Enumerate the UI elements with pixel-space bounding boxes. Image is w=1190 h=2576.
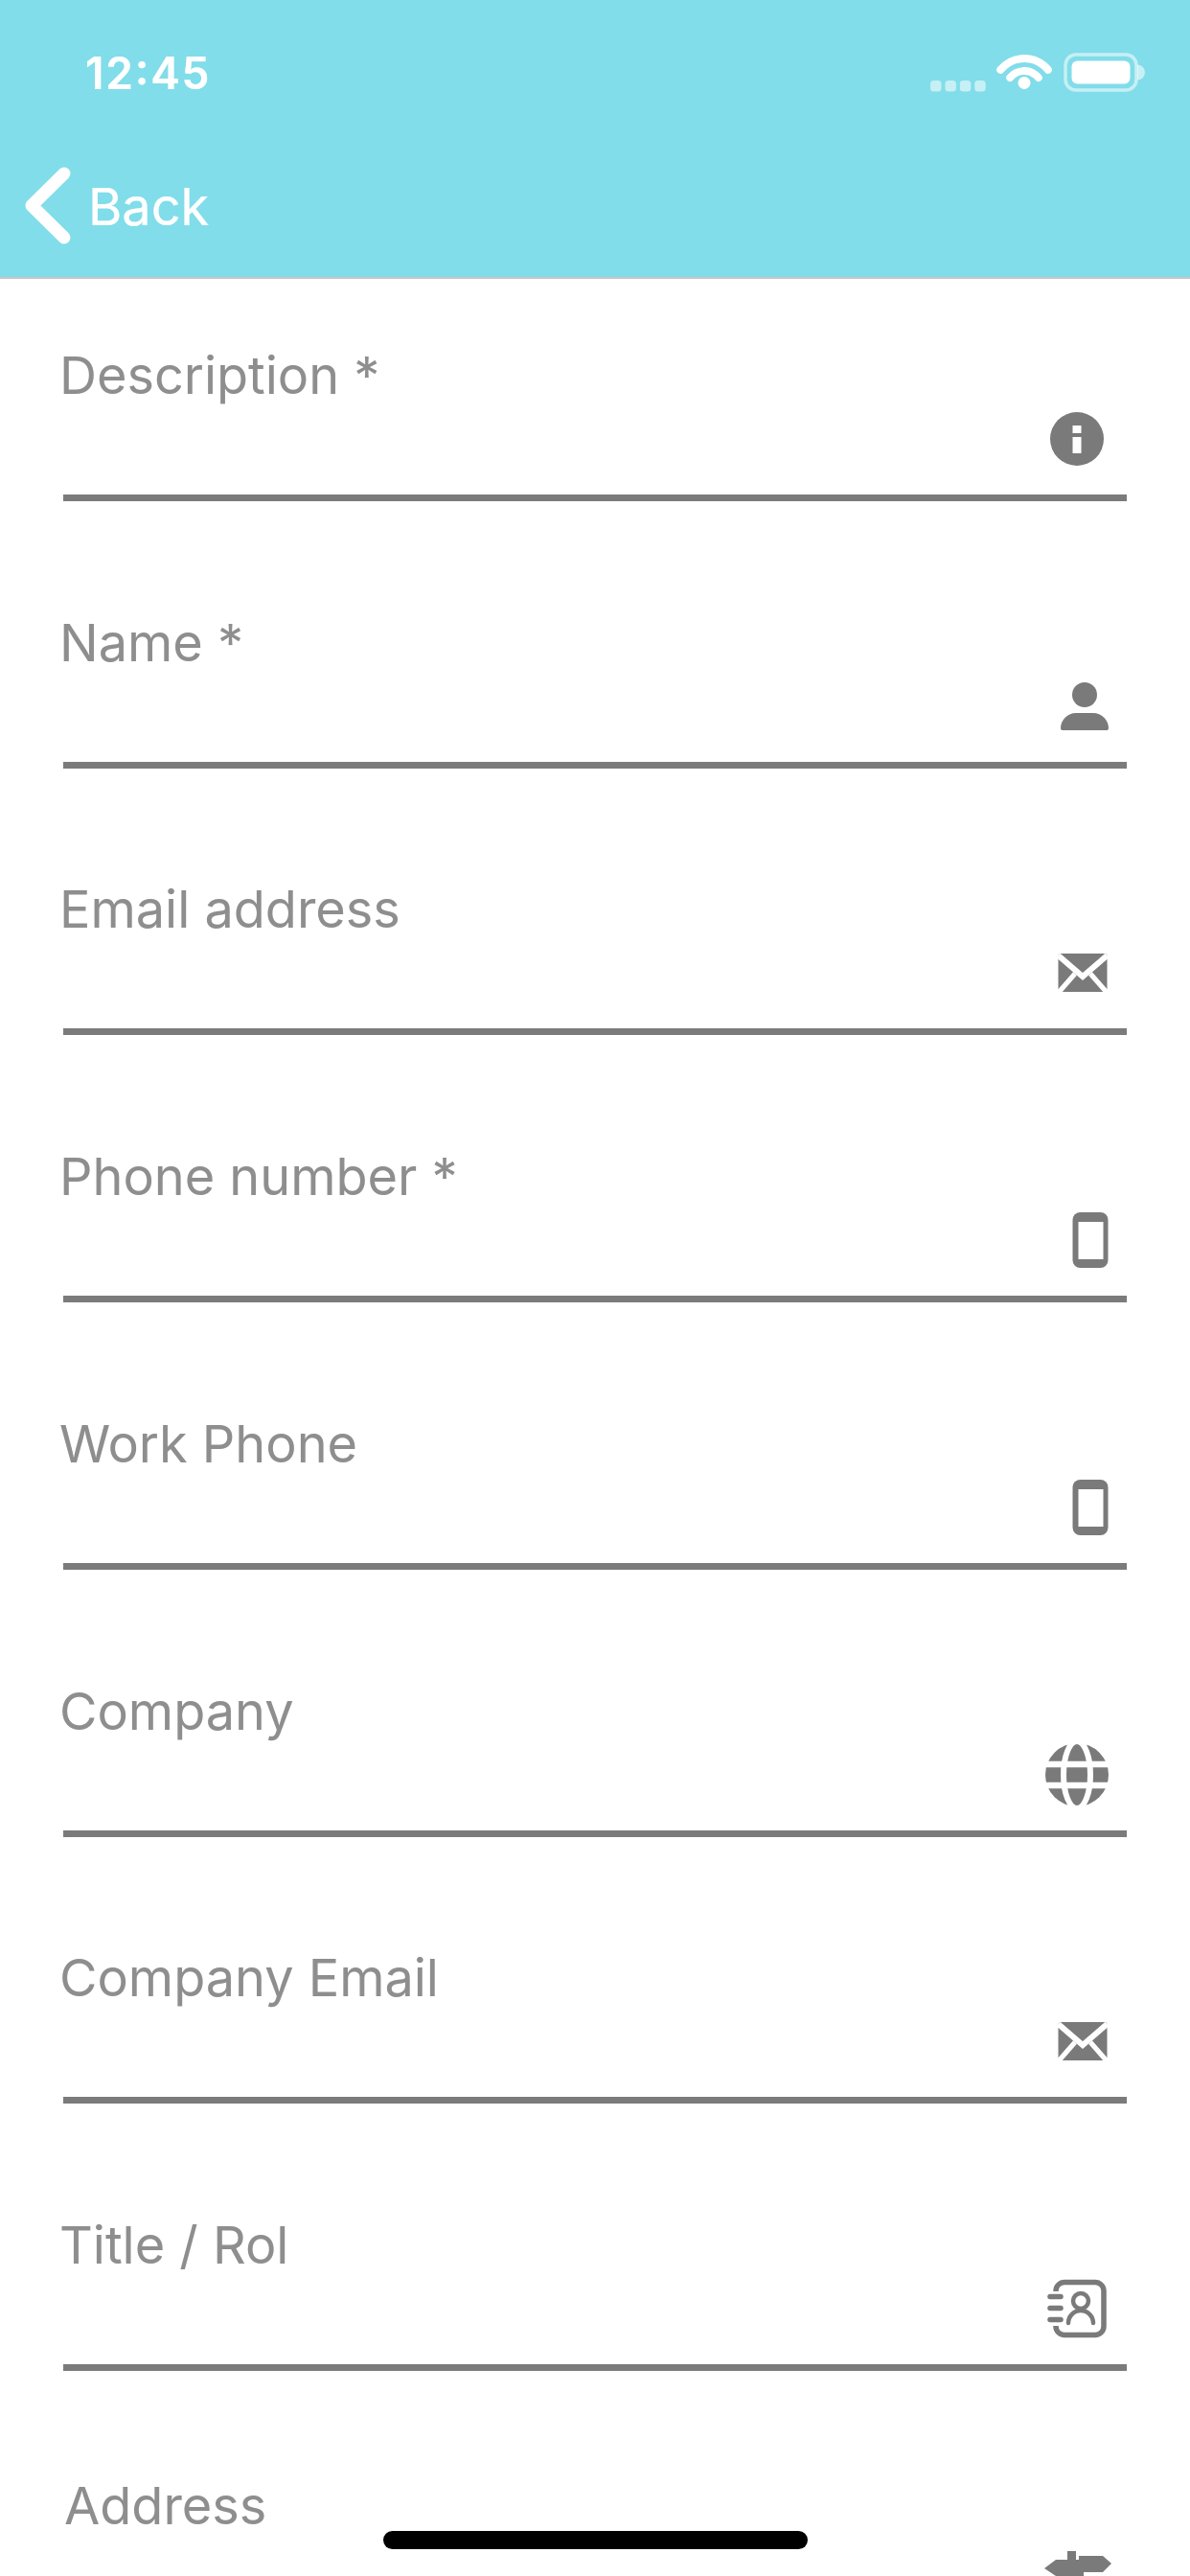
- button[interactable]: Email address: [0, 870, 1190, 1043]
- staticText: Back: [88, 175, 210, 238]
- staticText: Phone number *: [59, 1145, 458, 1207]
- staticText: Description *: [59, 344, 380, 406]
- staticText: Email address: [59, 878, 400, 940]
- button[interactable]: Company Email: [0, 1939, 1190, 2111]
- button[interactable]: Work Phone: [0, 1405, 1190, 1577]
- button[interactable]: Phone number *: [0, 1138, 1190, 1310]
- staticText: Company: [59, 1680, 294, 1742]
- staticText: Address: [64, 2474, 267, 2537]
- staticText: Company Email: [59, 1946, 439, 2009]
- staticText: Name *: [59, 611, 244, 674]
- button[interactable]: Back: [10, 153, 278, 259]
- staticText: Title / Rol: [59, 2214, 289, 2276]
- staticText: Work Phone: [59, 1413, 358, 1475]
- button[interactable]: Name *: [0, 604, 1190, 776]
- button[interactable]: Description *: [0, 336, 1190, 509]
- button[interactable]: Company: [0, 1672, 1190, 1845]
- button[interactable]: Title / Rol: [0, 2206, 1190, 2379]
- staticText: 12:45: [85, 46, 212, 100]
